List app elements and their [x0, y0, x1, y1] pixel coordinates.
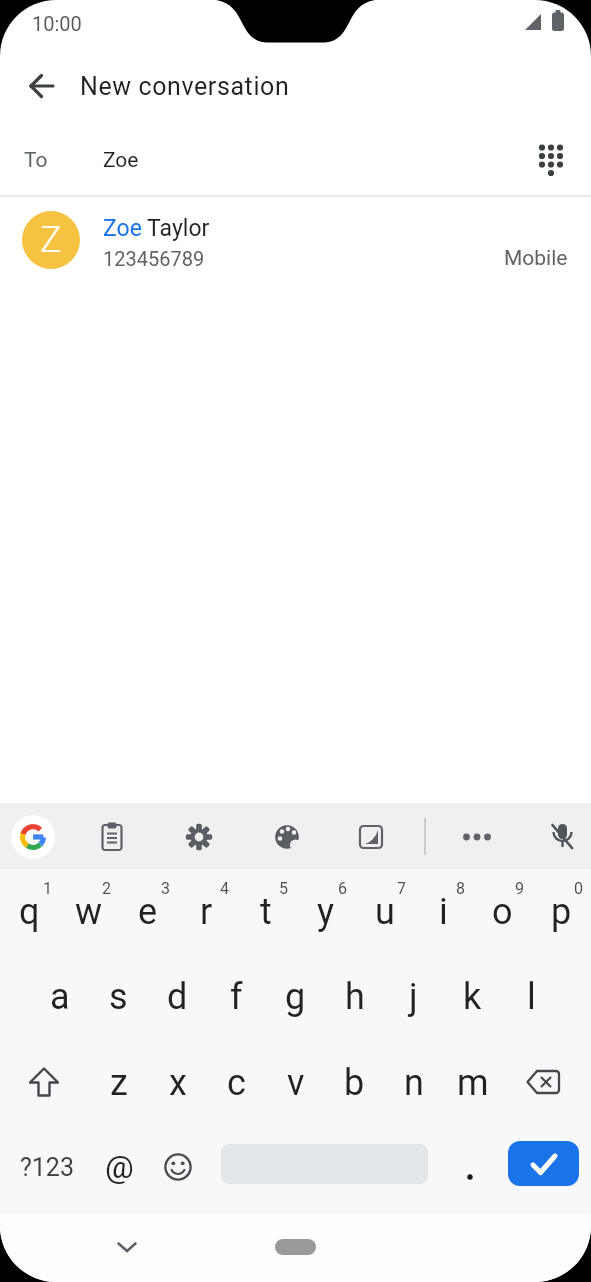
- staticText: t: [260, 891, 272, 933]
- staticText: New conversation: [80, 72, 290, 101]
- button[interactable]: [11, 815, 55, 859]
- button[interactable]: c: [207, 1040, 266, 1126]
- staticText: To: [24, 148, 48, 173]
- button[interactable]: [538, 813, 586, 861]
- staticText: s: [109, 976, 128, 1018]
- button[interactable]: e: [118, 869, 177, 955]
- staticText: z: [110, 1062, 128, 1104]
- button[interactable]: [263, 813, 311, 861]
- button[interactable]: r: [177, 869, 236, 955]
- staticText: d: [167, 976, 188, 1018]
- button[interactable]: [103, 1223, 151, 1271]
- staticText: 10:00: [32, 12, 82, 35]
- button[interactable]: [445, 1134, 495, 1220]
- staticText: 8: [456, 879, 465, 897]
- button[interactable]: y: [296, 869, 355, 955]
- staticText: x: [169, 1062, 187, 1104]
- button[interactable]: d: [148, 954, 207, 1040]
- button[interactable]: p: [532, 869, 591, 955]
- staticText: 3: [161, 879, 170, 897]
- button[interactable]: j: [384, 954, 443, 1040]
- button[interactable]: [453, 813, 501, 861]
- staticText: Mobile: [504, 246, 568, 271]
- staticText: n: [404, 1062, 424, 1104]
- button[interactable]: [513, 1052, 573, 1112]
- staticText: g: [285, 976, 306, 1018]
- staticText: Z: [40, 219, 62, 261]
- button[interactable]: [175, 813, 223, 861]
- button[interactable]: [14, 1052, 74, 1112]
- button[interactable]: [508, 1141, 579, 1186]
- staticText: k: [463, 976, 482, 1018]
- button[interactable]: v: [266, 1040, 325, 1126]
- button[interactable]: w: [59, 869, 118, 955]
- button[interactable]: [17, 62, 65, 110]
- button[interactable]: f: [207, 954, 266, 1040]
- button[interactable]: u: [355, 869, 414, 955]
- button[interactable]: k: [443, 954, 502, 1040]
- button[interactable]: a: [30, 954, 89, 1040]
- staticText: b: [344, 1062, 365, 1104]
- button[interactable]: h: [325, 954, 384, 1040]
- staticText: 1: [43, 879, 52, 897]
- staticText: h: [345, 976, 365, 1018]
- staticText: 0: [574, 879, 583, 897]
- button[interactable]: @: [89, 1124, 149, 1210]
- staticText: i: [439, 891, 448, 933]
- staticText: l: [527, 976, 536, 1018]
- staticText: p: [551, 891, 572, 933]
- button[interactable]: [527, 136, 575, 184]
- button[interactable]: Z: [0, 197, 591, 283]
- staticText: 5: [279, 879, 288, 897]
- button[interactable]: ?123: [17, 1124, 77, 1210]
- staticText: v: [287, 1062, 305, 1104]
- staticText: a: [50, 976, 70, 1018]
- staticText: 123456789: [103, 247, 205, 270]
- staticText: c: [227, 1062, 246, 1104]
- staticText: o: [492, 891, 513, 933]
- button[interactable]: g: [266, 954, 325, 1040]
- staticText: 6: [338, 879, 347, 897]
- staticText: 4: [220, 879, 229, 897]
- button[interactable]: q: [0, 869, 59, 955]
- button[interactable]: o: [473, 869, 532, 955]
- staticText: e: [138, 891, 158, 933]
- staticText: m: [457, 1062, 489, 1104]
- staticText: y: [317, 891, 335, 933]
- staticText: 2: [102, 879, 111, 897]
- staticText: Zoe: [103, 148, 139, 173]
- button[interactable]: s: [89, 954, 148, 1040]
- staticText: f: [230, 976, 243, 1018]
- button[interactable]: l: [502, 954, 561, 1040]
- staticText: @: [105, 1148, 134, 1186]
- button[interactable]: i: [414, 869, 473, 955]
- button[interactable]: [347, 813, 395, 861]
- button[interactable]: z: [89, 1040, 148, 1126]
- button[interactable]: [88, 813, 136, 861]
- staticText: r: [200, 891, 213, 933]
- button[interactable]: t: [236, 869, 295, 955]
- staticText: j: [409, 976, 418, 1018]
- button[interactable]: n: [384, 1040, 443, 1126]
- button[interactable]: x: [148, 1040, 207, 1126]
- button[interactable]: b: [325, 1040, 384, 1126]
- staticText: ?123: [20, 1153, 74, 1182]
- staticText: u: [375, 891, 395, 933]
- staticText: 9: [515, 879, 524, 897]
- staticText: 7: [397, 879, 406, 897]
- staticText: Zoe Taylor: [103, 215, 210, 242]
- staticText: q: [19, 891, 40, 933]
- button[interactable]: m: [443, 1040, 502, 1126]
- button[interactable]: [148, 1124, 208, 1210]
- staticText: w: [75, 891, 103, 933]
